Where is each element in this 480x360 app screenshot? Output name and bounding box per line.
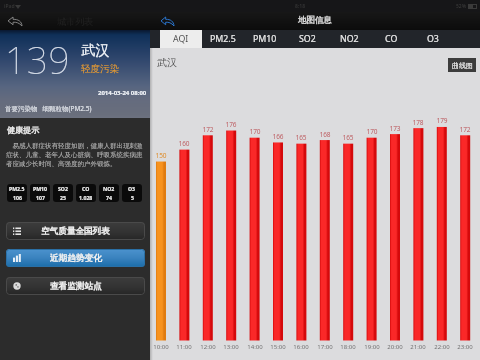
staticText: 12:00 [197,343,219,351]
staticText: 10:00 [150,343,172,351]
staticText: PM2.5 [9,185,25,192]
staticText: 172 [457,125,473,134]
button[interactable]: SO2 [286,30,328,48]
staticText: PM2.5 [210,33,236,45]
button[interactable]: CO [370,30,412,48]
button[interactable]: PM2.5 [202,30,244,48]
staticText: 武汉 [157,56,177,69]
staticText: 19:00 [361,343,383,351]
staticText: 14:00 [244,343,266,351]
staticText: 18:00 [337,343,359,351]
staticText: 150 [153,151,169,160]
staticText: 52% [456,3,467,10]
staticText: 地图信息 [298,15,332,26]
staticText: 2014-03-24 08:00 [98,89,147,97]
button[interactable]: SO2 [53,184,73,202]
button[interactable]: O3 [412,30,454,48]
staticText: 23:00 [454,343,476,351]
staticText: SO2 [299,33,316,45]
staticText: 17:00 [314,343,336,351]
staticText: 15:00 [267,343,289,351]
staticText: 178 [410,118,426,127]
staticText: 轻度污染 [81,63,120,75]
staticText: NO2 [103,185,115,192]
button[interactable]: PM10 [30,184,50,202]
staticText: 11:00 [173,343,195,351]
staticText: 172 [200,125,216,134]
staticText: 165 [340,133,356,142]
staticText: 22:00 [431,343,453,351]
staticText: 165 [293,133,309,142]
staticText: 160 [176,139,192,148]
staticText: PM10 [33,185,48,192]
staticText: 139 [5,34,71,84]
staticText: CO [385,33,398,45]
button[interactable]: O3 [122,184,142,202]
staticText: 20:00 [384,343,406,351]
staticText: 13:00 [220,343,242,351]
button[interactable]: 查看监测站点 [6,277,145,295]
button[interactable]: CO [76,184,96,202]
staticText: 74 [106,194,112,201]
staticText: 武汉 [81,41,110,59]
staticText: 查看监测站点 [50,281,102,292]
staticText: 179 [434,116,450,125]
staticText: NO2 [340,33,359,45]
staticText: 166 [270,132,286,141]
button[interactable]: PM2.5 [7,184,27,202]
button[interactable]: NO2 [328,30,370,48]
button[interactable]: 空气质量全国列表 [6,222,145,240]
staticText: O3 [128,185,136,192]
staticText: 近期趋势变化 [50,253,102,264]
button[interactable]: Back [157,13,177,29]
staticText: 176 [223,120,239,129]
staticText: SO2 [58,185,68,192]
staticText: 173 [387,124,403,133]
staticText: 空气质量全国列表 [41,226,110,237]
staticText: iPad [4,3,15,10]
staticText: PM10 [253,33,277,45]
staticText: 170 [364,127,380,136]
staticText: 城市列表 [57,16,93,27]
staticText: O3 [427,33,439,45]
staticText: 1.028 [79,194,93,201]
button[interactable]: Back [5,13,25,29]
staticText: 5 [131,194,134,201]
button[interactable]: 近期趋势变化 [6,249,145,267]
staticText: 170 [247,127,263,136]
staticText: 8:18 [295,3,305,10]
staticText: 16:00 [290,343,312,351]
staticText: 首要污染物 细颗粒物(PM2.5) [5,104,92,113]
staticText: CO [82,185,90,192]
staticText: 曲线图 [452,61,473,70]
button[interactable]: NO2 [99,184,119,202]
staticText: 107 [36,194,45,201]
button[interactable]: AQI [160,30,202,48]
staticText: 易感人群症状有轻度加剧，健康人群出现刺激症状、儿童、老年人及心脏病、呼吸系统疾病… [6,141,143,168]
staticText: 25 [60,194,66,201]
staticText: AQI [173,33,189,45]
staticText: 106 [13,194,22,201]
button[interactable]: PM10 [244,30,286,48]
staticText: 168 [317,130,333,139]
staticText: 21:00 [407,343,429,351]
staticText: 健康提示 [7,125,39,135]
button[interactable]: 曲线图 [448,58,476,72]
